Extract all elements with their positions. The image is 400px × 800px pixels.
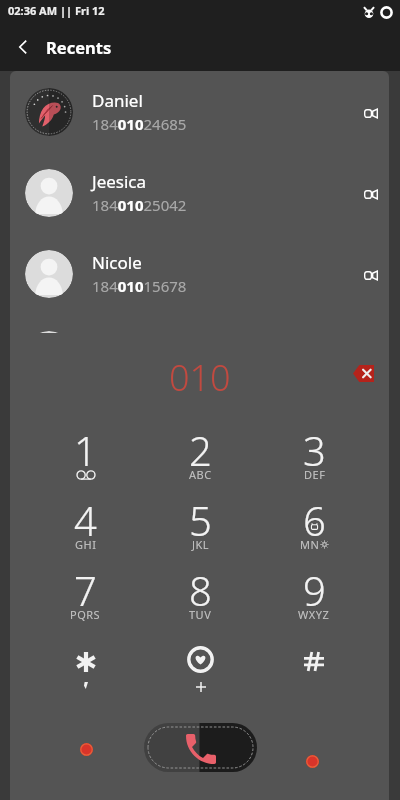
staticText: TUV bbox=[189, 607, 212, 622]
button[interactable]: Daniel bbox=[10, 71, 389, 152]
staticText: JKL bbox=[192, 537, 210, 552]
staticText: 02:36 AM || Fri 12 bbox=[8, 3, 105, 18]
staticText: 7 bbox=[74, 563, 97, 617]
button[interactable]: 7 bbox=[28, 576, 143, 646]
button[interactable]: Nicole bbox=[10, 233, 389, 314]
button[interactable]: 5 bbox=[143, 506, 257, 576]
staticText: 1 bbox=[74, 423, 97, 477]
staticText: WXYZ bbox=[298, 607, 330, 622]
staticText: 18401025042 bbox=[92, 195, 187, 215]
staticText: Recents bbox=[46, 36, 112, 58]
button[interactable]: Call bbox=[144, 723, 257, 772]
button[interactable]: Back bbox=[0, 24, 46, 70]
button[interactable]: Backspace bbox=[345, 355, 381, 391]
button[interactable]: 6 bbox=[257, 506, 371, 576]
staticText: 010 bbox=[169, 353, 231, 402]
staticText: 18401024685 bbox=[92, 114, 187, 134]
button[interactable] bbox=[257, 646, 371, 716]
staticText: 3 bbox=[303, 423, 326, 477]
button[interactable]: 4 bbox=[28, 506, 143, 576]
staticText: 5 bbox=[189, 493, 212, 547]
button[interactable]: Video call bbox=[345, 90, 389, 134]
button[interactable] bbox=[143, 646, 257, 716]
button[interactable]: Video call bbox=[345, 252, 389, 296]
button[interactable]: Jeesica bbox=[10, 152, 389, 233]
staticText: 2 bbox=[189, 423, 212, 477]
staticText: 18401015678 bbox=[92, 276, 187, 296]
button[interactable]: Video call bbox=[345, 171, 389, 215]
button[interactable]: Kevin bbox=[10, 314, 389, 333]
staticText: DEF bbox=[304, 467, 326, 482]
staticText: 4 bbox=[74, 493, 97, 547]
staticText: Nicole bbox=[92, 251, 142, 274]
staticText: 6 bbox=[303, 493, 326, 547]
button[interactable]: 9 bbox=[257, 576, 371, 646]
button[interactable]: 3 bbox=[257, 436, 371, 506]
button[interactable]: 2 bbox=[143, 436, 257, 506]
button[interactable]: 8 bbox=[143, 576, 257, 646]
staticText: GHI bbox=[75, 537, 97, 552]
staticText: 9 bbox=[303, 563, 326, 617]
staticText: 8 bbox=[189, 563, 212, 617]
staticText: Daniel bbox=[92, 89, 143, 112]
staticText: Jeesica bbox=[92, 170, 147, 193]
staticText: ABC bbox=[189, 467, 212, 482]
staticText: PQRS bbox=[70, 607, 101, 622]
button[interactable]: 1 bbox=[28, 436, 143, 506]
button[interactable] bbox=[28, 646, 143, 716]
staticText: MN bbox=[300, 537, 320, 552]
